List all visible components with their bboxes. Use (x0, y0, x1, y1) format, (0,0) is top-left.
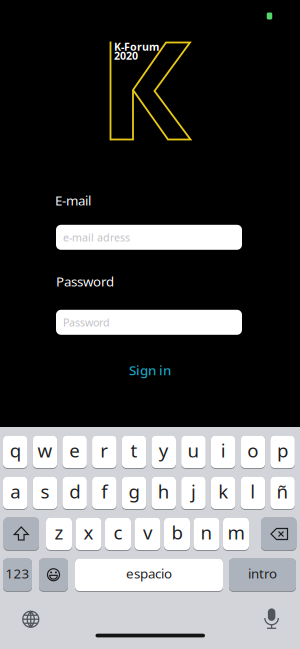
staticText: u (187, 438, 199, 463)
button[interactable]: Delete (261, 517, 296, 551)
button[interactable]: y (151, 435, 176, 469)
button[interactable]: b (164, 517, 190, 551)
button[interactable]: w (33, 435, 57, 469)
staticText: o (247, 438, 258, 463)
button[interactable]: d (62, 476, 87, 510)
staticText: j (191, 479, 196, 504)
button[interactable]: q (3, 435, 27, 469)
staticText: e-mail adress (63, 230, 130, 244)
staticText: i (221, 438, 226, 463)
button[interactable]: f (92, 476, 117, 510)
staticText: K-Forum (114, 39, 159, 54)
staticText: g (129, 479, 140, 504)
staticText: Password (56, 272, 114, 290)
button[interactable]: Shift (3, 517, 39, 551)
button[interactable]: Emoji (39, 558, 68, 592)
staticText: k (218, 479, 228, 504)
button[interactable]: e (62, 435, 87, 469)
staticText: t (131, 438, 138, 463)
button[interactable]: c (105, 517, 131, 551)
staticText: 2020 (114, 48, 138, 63)
button[interactable]: m (223, 517, 249, 551)
button[interactable]: Password (56, 310, 242, 335)
button[interactable]: v (134, 517, 160, 551)
button[interactable]: t (122, 435, 146, 469)
button[interactable]: z (46, 517, 72, 551)
button[interactable]: s (33, 476, 57, 510)
staticText: espacio (126, 564, 172, 582)
button[interactable]: n (193, 517, 219, 551)
button[interactable]: espacio (75, 558, 223, 592)
staticText: w (37, 438, 52, 463)
staticText: q (10, 438, 21, 463)
staticText: Sign in (129, 361, 171, 379)
button[interactable]: Next keyboard (22, 610, 39, 628)
staticText: p (277, 438, 288, 463)
staticText: f (101, 479, 107, 504)
staticText: 123 (5, 564, 29, 582)
staticText: e (69, 438, 80, 463)
button[interactable]: Dictation (264, 606, 280, 629)
staticText: Password (63, 315, 110, 329)
staticText: h (158, 479, 170, 504)
button[interactable]: k (211, 476, 235, 510)
button[interactable]: e-mail adress (56, 225, 242, 250)
button[interactable]: h (151, 476, 176, 510)
button[interactable]: intro (229, 558, 296, 592)
button[interactable]: u (181, 435, 206, 469)
staticText: y (159, 438, 169, 463)
staticText: d (69, 479, 80, 504)
button[interactable]: Sign in (129, 361, 171, 379)
staticText: l (250, 479, 255, 504)
staticText: z (54, 520, 63, 545)
staticText: m (227, 520, 244, 545)
button[interactable]: j (181, 476, 206, 510)
button[interactable]: g (122, 476, 146, 510)
staticText: intro (248, 564, 277, 582)
staticText: r (100, 438, 108, 463)
staticText: E-mail (55, 191, 91, 209)
button[interactable]: l (241, 476, 265, 510)
button[interactable]: p (270, 435, 295, 469)
button[interactable]: o (241, 435, 265, 469)
button[interactable]: i (211, 435, 235, 469)
staticText: ñ (277, 479, 289, 504)
button[interactable]: ñ (270, 476, 295, 510)
staticText: v (143, 520, 152, 545)
button[interactable]: 123 (3, 558, 32, 592)
staticText: a (10, 479, 20, 504)
staticText: b (171, 520, 182, 545)
staticText: s (40, 479, 49, 504)
button[interactable]: x (75, 517, 101, 551)
staticText: c (113, 520, 122, 545)
button[interactable]: a (3, 476, 27, 510)
button[interactable]: r (92, 435, 117, 469)
staticText: x (83, 520, 93, 545)
staticText: n (200, 520, 212, 545)
